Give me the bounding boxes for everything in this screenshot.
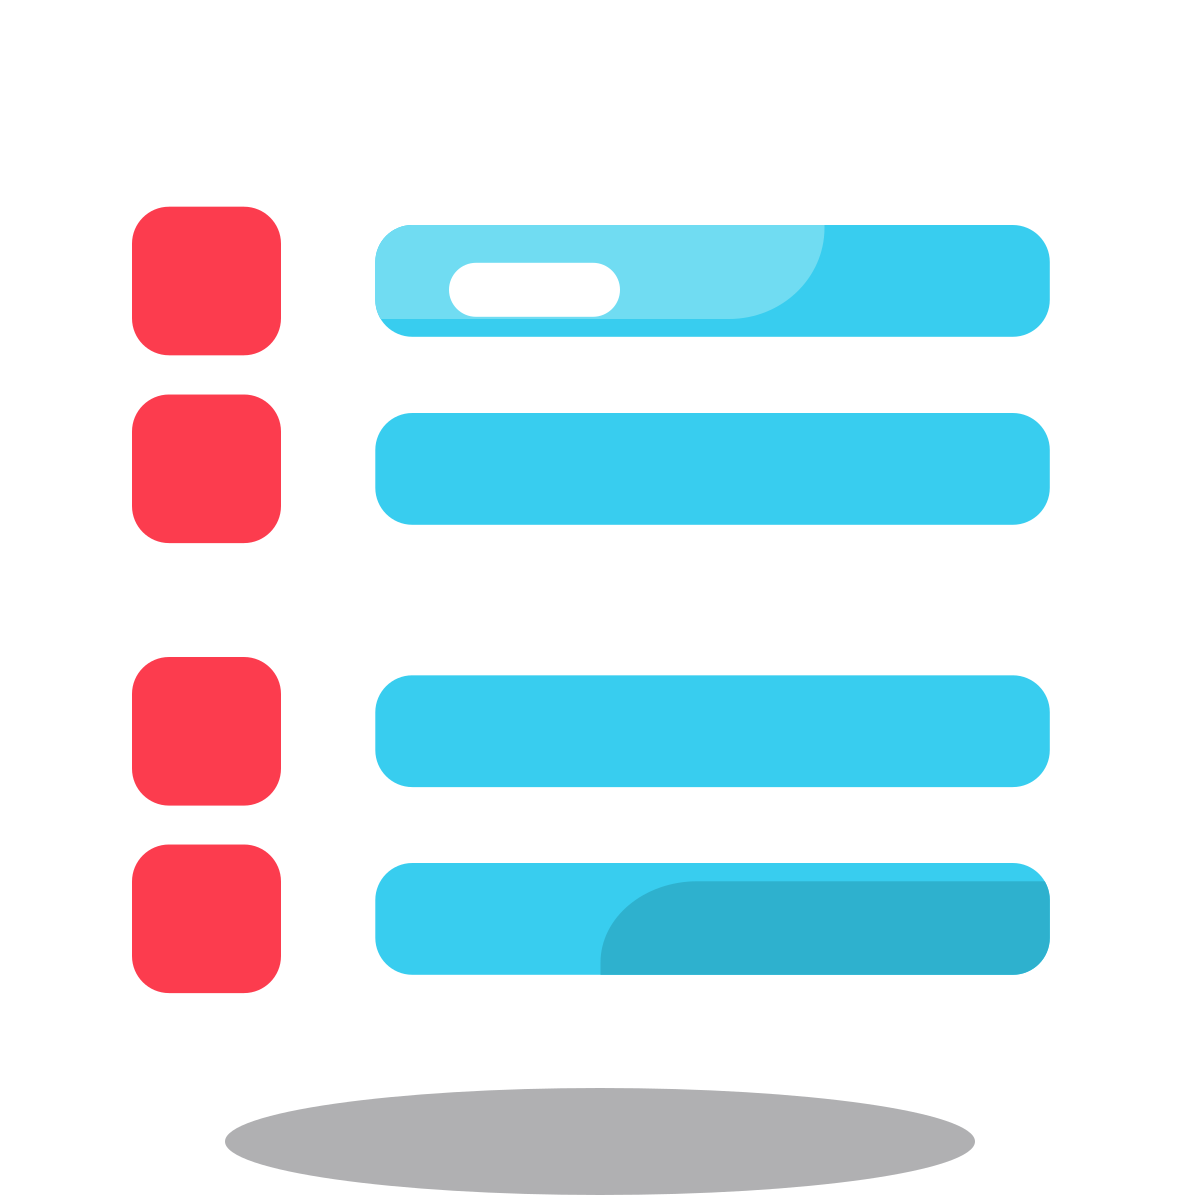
button[interactable]: Item 3 marker	[132, 657, 281, 806]
button[interactable]: Item 3	[375, 675, 1050, 787]
button[interactable]: Item 1 marker	[132, 207, 281, 355]
button[interactable]: Item 4	[375, 863, 1050, 975]
button[interactable]: Item 2	[375, 413, 1050, 525]
button[interactable]: Item 4 marker	[132, 844, 281, 993]
button[interactable]: Item 2 marker	[132, 394, 281, 543]
button[interactable]: Item 1	[375, 225, 1050, 337]
